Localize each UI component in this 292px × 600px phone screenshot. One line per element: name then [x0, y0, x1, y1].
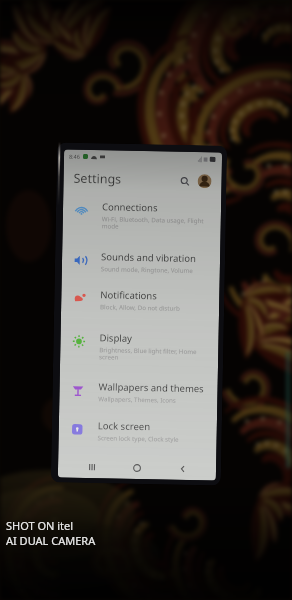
staticText: Brightness, Blue light filter, Home scre…: [99, 345, 207, 363]
staticText: Sounds and vibration: [101, 250, 196, 265]
staticText: Screen lock type, Clock style: [97, 433, 179, 443]
button[interactable]: Home: [125, 457, 149, 479]
button[interactable]: Sounds and vibration: [62, 243, 220, 284]
button[interactable]: Lock screen: [58, 412, 217, 453]
button[interactable]: Search: [176, 173, 193, 189]
staticText: Wallpapers and themes: [98, 380, 205, 395]
button[interactable]: Recent apps: [80, 456, 104, 478]
button[interactable]: Back: [171, 458, 195, 480]
staticText: Wi-Fi, Bluetooth, Data usage, Flight mod…: [102, 214, 210, 232]
button[interactable]: Account: [197, 174, 212, 188]
staticText: Sound mode, Ringtone, Volume: [101, 264, 193, 274]
staticText: Connections: [102, 200, 158, 214]
staticText: SHOT ON itel: [6, 518, 74, 533]
staticText: Settings: [73, 170, 122, 188]
button[interactable]: Connections: [62, 193, 221, 246]
button[interactable]: Display: [60, 324, 219, 376]
button[interactable]: Wallpapers and themes: [59, 373, 218, 415]
staticText: Block, Allow, Do not disturb: [100, 302, 180, 312]
staticText: Lock screen: [98, 419, 151, 433]
staticText: 8:46: [69, 153, 80, 160]
button[interactable]: Notifications: [61, 281, 220, 327]
staticText: Notifications: [100, 288, 157, 302]
staticText: AI DUAL CAMERA: [6, 533, 96, 548]
staticText: Wallpapers, Themes, Icons: [98, 394, 176, 404]
staticText: Display: [99, 331, 133, 345]
